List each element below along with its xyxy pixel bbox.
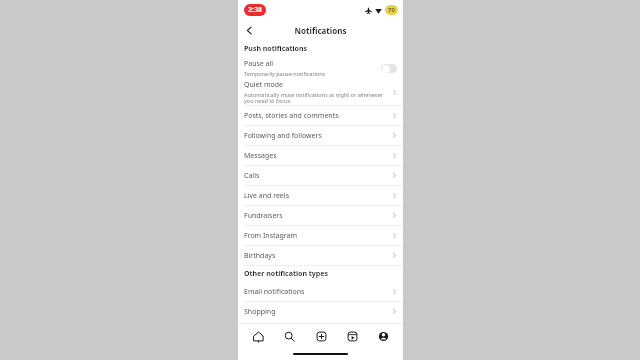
staticText: Messages xyxy=(244,151,391,161)
button[interactable]: Posts, stories and comments xyxy=(238,106,403,125)
button[interactable]: Shopping xyxy=(238,302,403,321)
button[interactable]: Calls xyxy=(238,166,403,185)
staticText: Following and followers xyxy=(244,131,391,141)
button[interactable]: Reels xyxy=(341,325,363,347)
button[interactable]: Fundraisers xyxy=(238,206,403,225)
button[interactable]: Email notifications xyxy=(238,282,403,301)
staticText: 2:38 xyxy=(248,5,262,15)
staticText: Birthdays xyxy=(244,251,391,261)
staticText: Notifications xyxy=(238,25,403,36)
button[interactable]: Quiet mode xyxy=(238,79,403,105)
button[interactable]: Live and reels xyxy=(238,186,403,205)
button[interactable]: Search xyxy=(278,325,300,347)
staticText: Shopping xyxy=(244,307,391,317)
button[interactable]: Following and followers xyxy=(238,126,403,145)
staticText: From Instagram xyxy=(244,231,391,241)
button[interactable]: Birthdays xyxy=(238,246,403,265)
staticText: Quiet mode xyxy=(244,80,283,90)
button[interactable]: From Instagram xyxy=(238,226,403,245)
button[interactable]: Home xyxy=(247,325,269,347)
staticText: Other notification types xyxy=(244,269,328,279)
staticText: Temporarily pause notifications xyxy=(244,70,326,77)
staticText: Calls xyxy=(244,171,391,181)
staticText: Posts, stories and comments xyxy=(244,111,391,121)
button[interactable]: Back xyxy=(238,19,260,41)
staticText: Push notifications xyxy=(244,44,308,54)
button[interactable]: Messages xyxy=(238,146,403,165)
staticText: Automatically mute notifications at nigh… xyxy=(244,91,388,105)
staticText: Fundraisers xyxy=(244,211,391,221)
staticText: 70 xyxy=(388,6,395,14)
button[interactable]: Create xyxy=(310,325,332,347)
staticText: Live and reels xyxy=(244,191,391,201)
staticText: Pause all xyxy=(244,59,274,69)
staticText: Email notifications xyxy=(244,287,391,297)
button[interactable]: Profile xyxy=(372,325,394,347)
button[interactable]: Pause all xyxy=(238,57,403,79)
